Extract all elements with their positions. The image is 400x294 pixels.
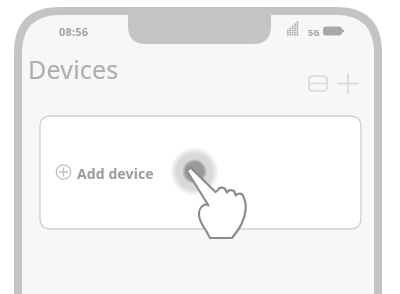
- button[interactable]: Add: [335, 71, 361, 97]
- button[interactable]: Group devices: [305, 71, 331, 97]
- button[interactable]: Add device: [40, 116, 361, 229]
- staticText: 5G: [308, 26, 320, 38]
- staticText: Devices: [28, 52, 119, 86]
- staticText: Add device: [77, 164, 154, 183]
- staticText: 08:56: [59, 24, 89, 39]
